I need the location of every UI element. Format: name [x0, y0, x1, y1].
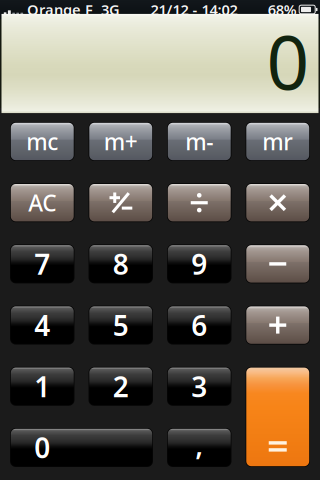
button[interactable]: 2 [88, 367, 153, 406]
button[interactable]: Plus minus [88, 183, 153, 222]
button[interactable]: 5 [88, 306, 153, 345]
button[interactable]: mr [245, 122, 310, 161]
button[interactable]: 3 [167, 367, 231, 406]
staticText: 0 [34, 429, 50, 466]
button[interactable]: mc [10, 122, 74, 161]
button[interactable]: 8 [88, 244, 153, 283]
staticText: , [195, 426, 203, 463]
staticText: 3G [93, 0, 120, 19]
button[interactable]: 4 [10, 306, 74, 345]
staticText: 6 [191, 306, 207, 344]
button[interactable]: 7 [10, 244, 74, 283]
button[interactable]: m- [167, 122, 231, 161]
button[interactable]: Plus [245, 306, 310, 345]
staticText: AC [28, 188, 56, 218]
button[interactable]: 9 [167, 244, 231, 283]
staticText: m- [185, 126, 213, 156]
staticText: 5 [113, 306, 129, 344]
staticText: mr [262, 126, 293, 156]
staticText: 8 [113, 245, 129, 282]
staticText: 2 [113, 368, 129, 405]
staticText: 1 [34, 368, 50, 405]
staticText: 21/12 - 14:02 [150, 0, 237, 19]
button[interactable]: Multiply [245, 183, 310, 222]
button[interactable]: Divide [167, 183, 231, 222]
button[interactable]: 1 [10, 367, 74, 406]
staticText: 68% [268, 0, 297, 19]
staticText: 7 [34, 245, 50, 282]
staticText: Orange F [23, 0, 93, 19]
staticText: m+ [104, 126, 138, 156]
button[interactable]: 6 [167, 306, 231, 345]
button[interactable]: Minus [245, 244, 310, 283]
staticText: mc [26, 126, 58, 156]
button[interactable]: AC [10, 183, 74, 222]
button[interactable]: m+ [88, 122, 153, 161]
button[interactable]: 0 [10, 428, 153, 467]
staticText: 0 [266, 11, 309, 110]
button[interactable]: Equals [245, 367, 310, 467]
staticText: 3 [191, 368, 207, 405]
staticText: 9 [191, 245, 207, 282]
staticText: 4 [34, 306, 50, 344]
button[interactable]: , [167, 428, 231, 467]
